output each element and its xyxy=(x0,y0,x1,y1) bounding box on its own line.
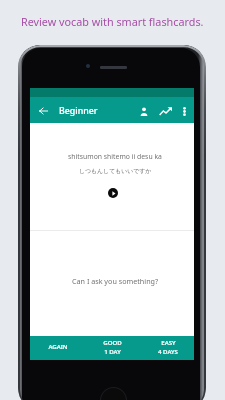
staticText: EASY xyxy=(161,338,176,346)
staticText: Review vocab with smart flashcards. xyxy=(21,14,204,29)
button[interactable]: Play audio xyxy=(108,188,118,198)
staticText: shitsumon shitemo ii desu ka xyxy=(68,152,162,161)
button[interactable]: EASY xyxy=(139,336,194,360)
staticText: Beginner xyxy=(59,105,98,117)
staticText: 4 DAYS xyxy=(158,347,178,355)
staticText: GOOD xyxy=(103,338,122,346)
button[interactable]: Back xyxy=(32,100,54,122)
button[interactable]: More options xyxy=(176,103,193,120)
staticText: AGAIN xyxy=(48,342,68,350)
button[interactable]: AGAIN xyxy=(30,336,84,360)
button[interactable]: GOOD xyxy=(84,336,139,360)
staticText: Can I ask you something? xyxy=(72,276,159,286)
staticText: しつもんしてもいいですか xyxy=(79,167,152,174)
staticText: 1 DAY xyxy=(104,347,121,355)
button[interactable]: Statistics xyxy=(155,101,175,121)
button[interactable]: Profile xyxy=(134,101,154,121)
